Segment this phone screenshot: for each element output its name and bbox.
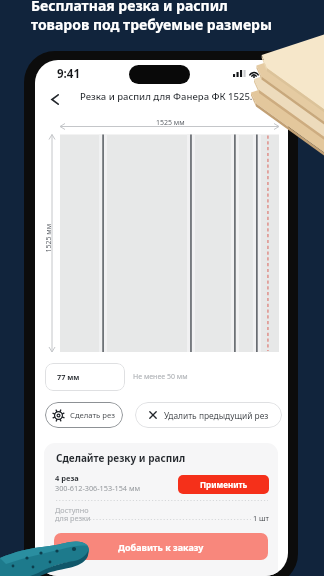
staticText: для резки: [55, 513, 91, 523]
staticText: товаров под требуемые размеры: [31, 15, 272, 34]
staticText: Добавить к заказу: [118, 541, 204, 553]
staticText: Доступно: [55, 505, 89, 515]
button[interactable]: Добавить к заказу: [54, 533, 268, 560]
staticText: 4 реза: [55, 473, 79, 483]
staticText: 77 мм: [57, 372, 80, 382]
staticText: 1 шт: [253, 513, 269, 523]
staticText: 9:41: [57, 66, 80, 82]
staticText: Сделать рез: [70, 410, 115, 420]
staticText: 300-612-306-153-154 мм: [55, 483, 141, 493]
staticText: Бесплатная резка и распил: [31, 0, 228, 15]
staticText: 1525 мм: [156, 118, 185, 128]
button[interactable]: Назад: [44, 88, 66, 110]
staticText: 1525 мм: [43, 223, 53, 252]
button[interactable]: Применить: [178, 475, 269, 494]
button[interactable]: Сделать рез: [45, 402, 123, 428]
staticText: Не менее 50 мм: [133, 372, 188, 382]
staticText: Резка и распил для Фанера ФК 1525...: [80, 90, 258, 103]
button[interactable]: Удалить предыдущий рез: [135, 402, 282, 428]
staticText: Сделайте резку и распил: [56, 451, 186, 465]
button[interactable]: 77 мм: [45, 363, 125, 391]
staticText: Удалить предыдущий рез: [164, 410, 269, 421]
staticText: Применить: [200, 479, 248, 490]
